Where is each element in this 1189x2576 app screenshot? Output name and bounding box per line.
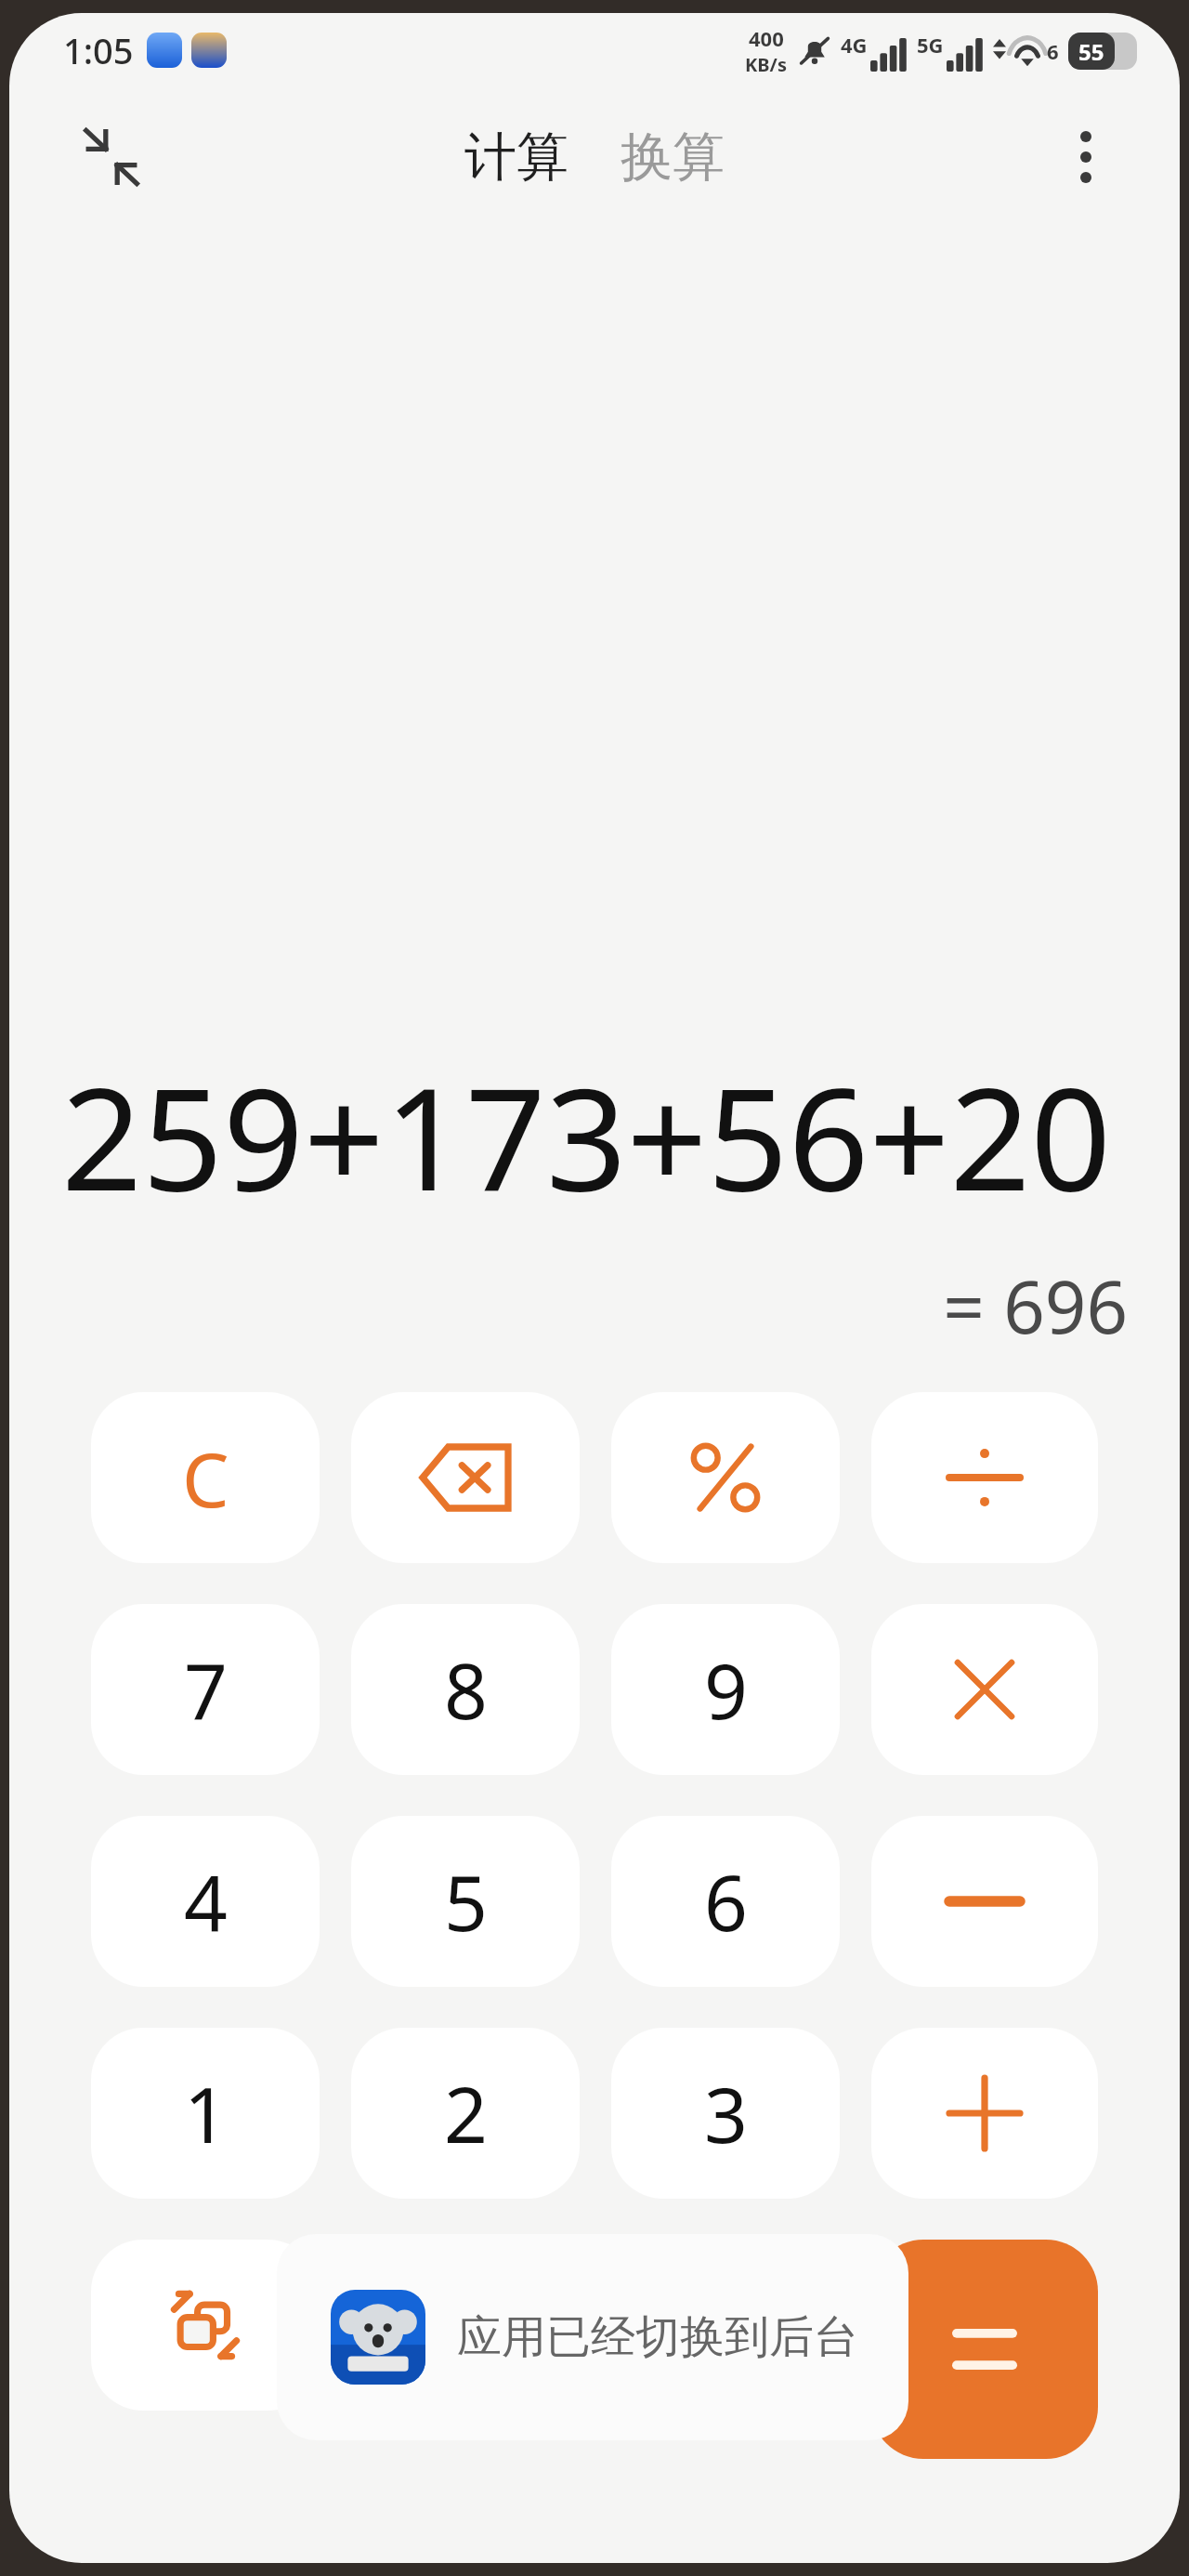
button[interactable]: 换算 — [608, 115, 738, 200]
staticText: 400 — [749, 24, 784, 52]
button[interactable]: 应用已经切换到后台 — [277, 2234, 908, 2440]
button[interactable]: Collapse — [67, 112, 156, 202]
button[interactable]: 计算 — [451, 115, 581, 200]
staticText: 55 — [1078, 36, 1104, 67]
staticText: 1:05 — [63, 26, 134, 74]
staticText: 3 — [704, 2061, 748, 2165]
staticText: = 696 — [61, 1256, 1128, 1355]
staticText: KB/s — [745, 52, 787, 77]
other: Divide — [949, 1445, 1020, 1510]
staticText: 4 — [184, 1849, 228, 1953]
button[interactable]: Minus — [871, 1816, 1098, 1987]
button[interactable]: Equals — [871, 2240, 1098, 2459]
other: Percent — [690, 1442, 761, 1513]
staticText: 4G — [841, 31, 868, 59]
staticText: . — [715, 2273, 736, 2377]
button[interactable]: 5 — [351, 1816, 580, 1987]
staticText: 7 — [184, 1637, 228, 1741]
other: Backspace — [423, 1447, 508, 1508]
button[interactable]: 6 — [611, 1816, 840, 1987]
button[interactable]: Multiply — [871, 1604, 1098, 1775]
staticText: 5 — [444, 1849, 488, 1953]
button[interactable]: 3 — [611, 2028, 840, 2199]
button[interactable]: Backspace — [351, 1392, 580, 1563]
staticText: 换算 — [621, 125, 725, 191]
button[interactable]: Convert — [91, 2240, 320, 2411]
staticText: C — [182, 1427, 229, 1529]
staticText: 8 — [444, 1637, 488, 1741]
button[interactable]: More options — [1044, 115, 1128, 199]
button[interactable]: Divide — [871, 1392, 1098, 1563]
button[interactable]: 2 — [351, 2028, 580, 2199]
other: Minus — [949, 1894, 1020, 1909]
other: Multiply — [954, 1659, 1015, 1720]
button[interactable]: 8 — [351, 1604, 580, 1775]
button[interactable]: 4 — [91, 1816, 320, 1987]
staticText: 5G — [917, 31, 944, 59]
staticText: 2 — [444, 2061, 488, 2165]
staticText: 9 — [704, 1637, 748, 1741]
button[interactable]: Clear — [91, 1392, 320, 1563]
staticText: 6 — [704, 1849, 748, 1953]
button[interactable]: 1 — [91, 2028, 320, 2199]
other: Plus — [949, 2078, 1020, 2149]
button[interactable]: Plus — [871, 2028, 1098, 2199]
button[interactable]: . — [611, 2240, 840, 2411]
button[interactable]: 7 — [91, 1604, 320, 1775]
staticText: 0 — [444, 2273, 488, 2377]
staticText: 计算 — [464, 125, 568, 191]
button[interactable]: Percent — [611, 1392, 840, 1563]
button[interactable]: 0 — [351, 2240, 580, 2411]
button[interactable]: 9 — [611, 1604, 840, 1775]
staticText: 259+173+56+208 — [61, 1040, 1128, 1232]
staticText: 应用已经切换到后台 — [457, 2309, 858, 2365]
staticText: 6 — [1047, 37, 1059, 65]
other: Convert — [166, 2286, 244, 2364]
staticText: 1 — [184, 2061, 228, 2165]
